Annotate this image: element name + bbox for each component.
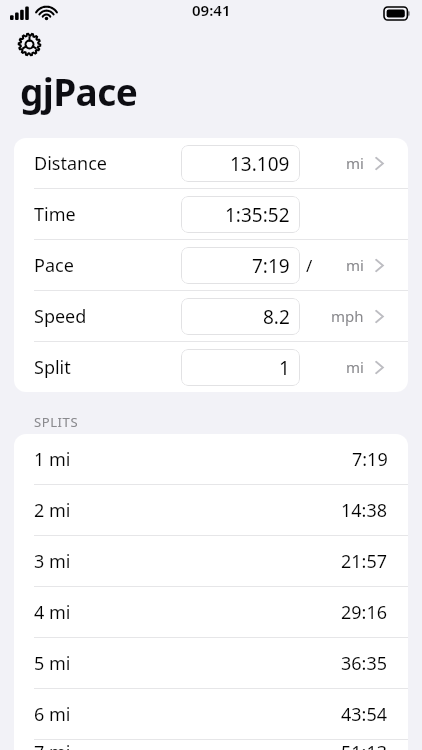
button[interactable]: Time bbox=[14, 189, 408, 239]
staticText: 21:57 bbox=[341, 549, 388, 574]
staticText: 29:16 bbox=[341, 600, 388, 625]
staticText: 09:41 bbox=[192, 0, 231, 20]
staticText: mi bbox=[346, 153, 364, 173]
staticText: 51:13 bbox=[341, 740, 388, 750]
staticText: 7:19 bbox=[252, 253, 290, 279]
staticText: Split bbox=[34, 355, 181, 380]
staticText: 8.2 bbox=[263, 304, 290, 330]
staticText: 7 mi bbox=[34, 740, 71, 750]
staticText: / bbox=[306, 254, 313, 277]
staticText: gjPace bbox=[20, 66, 138, 116]
button[interactable]: 3 mi bbox=[14, 536, 408, 586]
button[interactable]: 5 mi bbox=[14, 638, 408, 688]
staticText: 13.109 bbox=[230, 151, 290, 177]
staticText: mi bbox=[346, 255, 364, 275]
staticText: 6 mi bbox=[34, 702, 71, 727]
staticText: Pace bbox=[34, 253, 181, 278]
button[interactable]: 4 mi bbox=[14, 587, 408, 637]
staticText: Time bbox=[34, 202, 181, 227]
staticText: 1 mi bbox=[34, 447, 71, 472]
staticText: 7:19 bbox=[352, 447, 388, 472]
staticText: 2 mi bbox=[34, 498, 71, 523]
staticText: 1 bbox=[279, 355, 290, 381]
staticText: 4 mi bbox=[34, 600, 71, 625]
staticText: mph bbox=[331, 306, 364, 326]
staticText: 5 mi bbox=[34, 651, 71, 676]
button[interactable]: 6 mi bbox=[14, 689, 408, 739]
staticText: SPLITS bbox=[34, 413, 79, 431]
button[interactable]: 2 mi bbox=[14, 485, 408, 535]
button[interactable]: Distance bbox=[14, 138, 408, 188]
button[interactable]: Settings bbox=[12, 27, 46, 61]
staticText: 43:54 bbox=[341, 702, 388, 727]
staticText: 36:35 bbox=[341, 651, 388, 676]
button[interactable]: 1 mi bbox=[14, 434, 408, 484]
staticText: 3 mi bbox=[34, 549, 71, 574]
staticText: Speed bbox=[34, 304, 181, 329]
staticText: mi bbox=[346, 357, 364, 377]
staticText: Distance bbox=[34, 151, 181, 176]
button[interactable]: 7 mi bbox=[14, 740, 408, 750]
button[interactable]: Speed bbox=[14, 291, 408, 341]
staticText: 14:38 bbox=[341, 498, 388, 523]
button[interactable]: Pace bbox=[14, 240, 408, 290]
button[interactable]: Split bbox=[14, 342, 408, 392]
staticText: 1:35:52 bbox=[225, 202, 290, 228]
